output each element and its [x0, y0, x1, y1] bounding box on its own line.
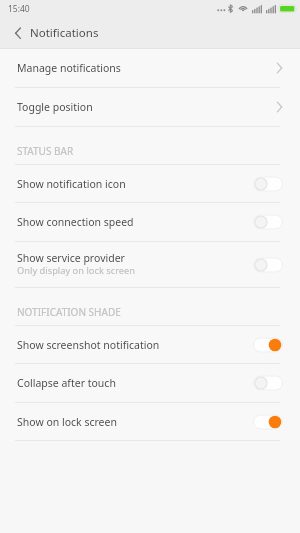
staticText: Show on lock screen [17, 415, 117, 429]
button[interactable]: Collapse after touch [0, 364, 300, 402]
staticText: 15:40 [8, 3, 30, 15]
staticText: Only display on lock screen [17, 264, 136, 277]
staticText: Toggle position [17, 100, 93, 114]
button[interactable]: Off [253, 214, 283, 230]
button[interactable]: Off [253, 375, 283, 391]
button[interactable]: Manage notifications [0, 49, 300, 87]
staticText: Collapse after touch [17, 376, 116, 390]
staticText: Show connection speed [17, 215, 134, 229]
button[interactable]: On [253, 337, 283, 353]
staticText: STATUS BAR [17, 144, 74, 158]
staticText: Show notification icon [17, 177, 126, 191]
button[interactable]: Show notification icon [0, 165, 300, 202]
button[interactable]: Off [253, 176, 283, 192]
button[interactable]: Off [253, 257, 283, 273]
staticText: Show screenshot notification [17, 338, 160, 352]
staticText: NOTIFICATION SHADE [17, 305, 121, 319]
staticText: Manage notifications [17, 61, 121, 75]
button[interactable]: Show on lock screen [0, 403, 300, 440]
staticText: Notifications [30, 25, 99, 41]
button[interactable]: Show service provider [0, 242, 300, 287]
staticText: Show service provider [17, 251, 125, 265]
button[interactable]: Show connection speed [0, 203, 300, 241]
button[interactable]: Toggle position [0, 88, 300, 126]
button[interactable]: Back [0, 17, 33, 48]
button[interactable]: On [253, 414, 283, 430]
button[interactable]: Show screenshot notification [0, 326, 300, 363]
